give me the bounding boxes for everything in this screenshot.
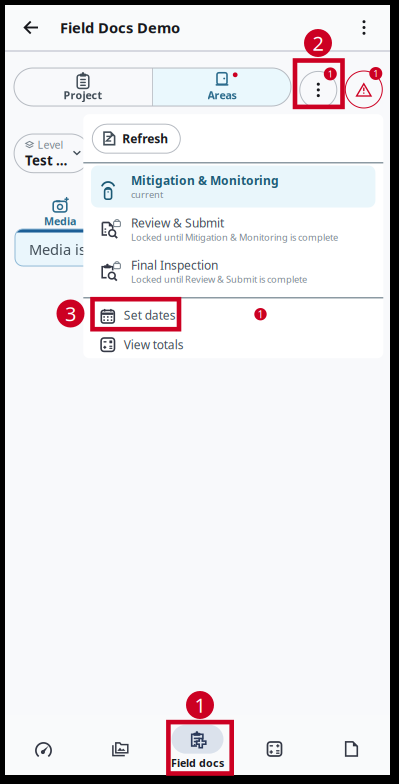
staticText: Field Docs Demo <box>60 18 180 37</box>
button[interactable]: Level <box>14 134 90 173</box>
staticText: 1 <box>373 67 378 80</box>
staticText: Review & Submit <box>131 215 224 231</box>
button[interactable]: Dashboard <box>5 715 82 775</box>
button[interactable]: Set dates <box>83 301 383 330</box>
button[interactable]: Refresh <box>92 124 180 153</box>
staticText: Refresh <box>122 131 168 147</box>
staticText: Project <box>63 88 102 102</box>
button[interactable]: Reports <box>313 715 390 775</box>
staticText: 3 <box>65 300 76 327</box>
staticText: Media <box>44 214 76 228</box>
button[interactable]: Final Inspection <box>83 250 368 292</box>
button[interactable]: Project <box>14 68 152 106</box>
button[interactable]: Issues <box>345 67 387 110</box>
staticText: 1 <box>257 307 263 321</box>
button[interactable]: Back <box>11 5 51 50</box>
button[interactable]: More options <box>344 5 384 50</box>
staticText: Final Inspection <box>131 257 218 273</box>
button[interactable]: Field docs <box>159 715 236 775</box>
staticText: 2 <box>312 30 323 56</box>
button[interactable]: View totals <box>83 332 383 358</box>
staticText: 1 <box>194 692 205 718</box>
staticText: Field docs <box>171 756 224 770</box>
staticText: Level <box>38 137 64 152</box>
staticText: Set dates <box>124 307 176 323</box>
staticText: Mitigation & Monitoring <box>131 172 279 188</box>
staticText: current <box>131 188 163 201</box>
button[interactable]: Photos <box>82 715 159 775</box>
button[interactable]: Workflow menu <box>300 67 342 110</box>
staticText: Media is not re <box>29 239 131 259</box>
staticText: View totals <box>124 337 184 353</box>
staticText: Locked until Mitigation & Monitoring is … <box>131 231 338 243</box>
button[interactable]: Areas <box>153 68 291 106</box>
staticText: Areas <box>207 88 236 102</box>
staticText: 1 <box>328 68 333 80</box>
button[interactable]: Mitigation & Monitoring <box>83 165 368 207</box>
staticText: Test Area <box>25 152 68 169</box>
button[interactable]: Calculations <box>236 715 313 775</box>
staticText: Locked until Review & Submit is complete <box>131 273 307 285</box>
button[interactable]: Review & Submit <box>83 209 368 250</box>
